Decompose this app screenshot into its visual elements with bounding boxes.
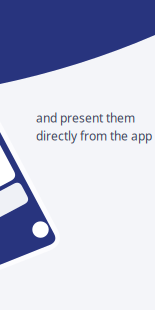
staticText: directly from the app	[36, 128, 152, 144]
staticText: and present them	[36, 110, 135, 126]
